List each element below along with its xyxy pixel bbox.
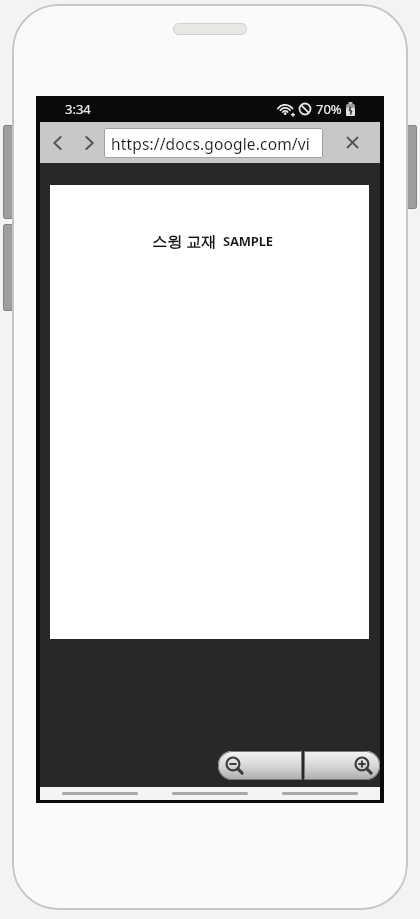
button[interactable]: [304, 751, 380, 780]
staticText: 스윙 교재: [152, 231, 216, 251]
button[interactable]: https://docs.google.com/vi: [104, 128, 323, 158]
staticText: https://docs.google.com/vi: [111, 133, 310, 154]
button[interactable]: [334, 122, 370, 163]
button[interactable]: [172, 792, 248, 795]
staticText: 70%: [316, 100, 342, 118]
button[interactable]: [218, 751, 302, 780]
button[interactable]: [74, 122, 104, 163]
staticText: 3:34: [65, 100, 91, 118]
button[interactable]: [62, 792, 138, 795]
button[interactable]: [282, 792, 358, 795]
staticText: SAMPLE: [223, 232, 273, 250]
button[interactable]: [40, 122, 74, 163]
